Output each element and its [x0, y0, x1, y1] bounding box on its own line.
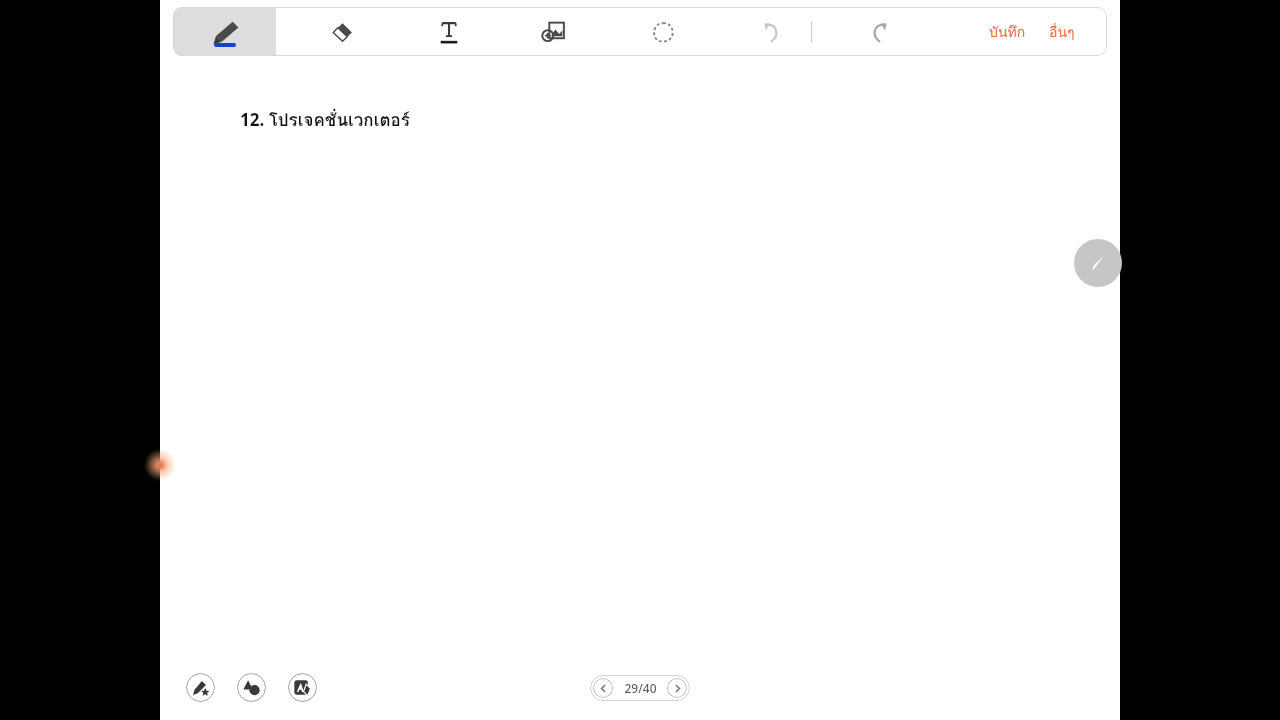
staticText: 29/40 — [624, 680, 657, 696]
staticText: 12. โปรเจคชั่นเวกเตอร์ — [240, 106, 410, 133]
staticText: อื่นๆ — [1049, 21, 1075, 43]
button[interactable]: Shapes — [237, 673, 266, 702]
button[interactable]: Text — [421, 7, 477, 56]
button[interactable]: Undo — [744, 7, 800, 56]
button[interactable]: Pen tool — [1074, 239, 1122, 287]
button[interactable]: Insert image — [526, 7, 582, 56]
button[interactable]: Previous page — [593, 678, 613, 698]
button[interactable]: Text style — [288, 673, 317, 702]
button[interactable]: Eraser — [313, 7, 369, 56]
button[interactable]: อื่นๆ — [1049, 17, 1075, 47]
button[interactable]: Pen — [173, 7, 276, 56]
button[interactable]: Pen settings — [186, 673, 215, 702]
button[interactable]: Lasso select — [635, 7, 691, 56]
staticText: บันทึก — [989, 21, 1026, 43]
button[interactable]: Next page — [667, 678, 687, 698]
button[interactable]: Redo — [851, 7, 907, 56]
button[interactable]: บันทึก — [989, 17, 1026, 47]
